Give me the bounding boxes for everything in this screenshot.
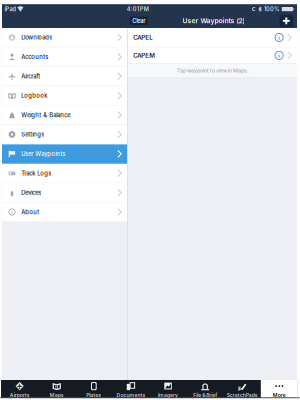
button[interactable]: Documents <box>112 380 149 397</box>
button[interactable]: Plates <box>75 380 112 397</box>
staticText: 100% <box>264 6 280 12</box>
button[interactable]: Logbook <box>2 86 127 106</box>
button[interactable]: More <box>261 380 298 397</box>
staticText: Logbook <box>21 92 47 99</box>
button[interactable]: Imagery <box>149 380 187 397</box>
button[interactable]: Aircraft <box>2 67 127 86</box>
button[interactable]: Add waypoint <box>279 14 294 28</box>
button[interactable]: Devices <box>2 183 127 203</box>
staticText: More <box>273 392 286 398</box>
staticText: ScratchPads <box>227 392 258 398</box>
staticText: Devices <box>21 189 41 196</box>
button[interactable]: About <box>2 203 127 222</box>
staticText: User Waypoints (2) <box>182 17 244 25</box>
button[interactable]: Track Logs <box>2 164 127 183</box>
button[interactable]: Clear <box>129 16 148 25</box>
staticText: User Waypoints <box>21 150 65 157</box>
staticText: Clear <box>132 17 145 24</box>
button[interactable]: Downloads <box>2 28 127 47</box>
staticText: Track Logs <box>21 170 51 177</box>
button[interactable]: Airports <box>1 380 38 397</box>
button[interactable]: Accounts <box>2 47 127 67</box>
staticText: Airports <box>10 392 30 398</box>
button[interactable]: CAPEL <box>128 28 297 47</box>
staticText: Accounts <box>21 53 48 60</box>
staticText: Plates <box>86 392 101 398</box>
staticText: Settings <box>21 131 44 138</box>
button[interactable]: Maps <box>38 380 75 397</box>
button[interactable]: Weight & Balance <box>2 106 127 125</box>
staticText: iPad <box>4 6 15 12</box>
staticText: Tap waypoint to view in Maps. <box>177 67 248 74</box>
staticText: CAPEL <box>133 34 152 41</box>
button[interactable]: Settings <box>2 125 127 144</box>
staticText: File & Brief <box>193 392 217 398</box>
staticText: Weight & Balance <box>21 111 70 119</box>
button[interactable]: CAPEM <box>128 47 297 64</box>
button[interactable]: User Waypoints <box>2 144 127 164</box>
staticText: Maps <box>50 392 64 398</box>
staticText: About <box>21 208 39 216</box>
staticText: Aircraft <box>21 73 40 80</box>
staticText: CAPEM <box>133 52 155 59</box>
staticText: Imagery <box>158 392 178 398</box>
button[interactable]: File & Brief <box>187 380 224 397</box>
staticText: 4:01 PM <box>127 6 149 12</box>
staticText: Documents <box>116 392 145 398</box>
button[interactable]: ScratchPads <box>224 380 261 397</box>
staticText: Downloads <box>21 34 52 41</box>
